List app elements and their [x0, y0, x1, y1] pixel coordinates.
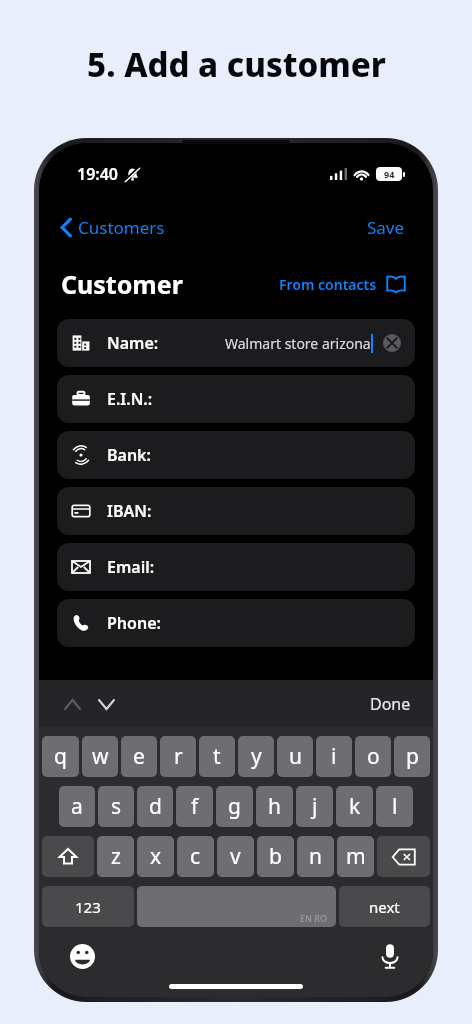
- button[interactable]: s: [98, 786, 134, 827]
- staticText: i: [331, 742, 337, 771]
- staticText: Phone:: [107, 612, 161, 634]
- staticText: IBAN:: [107, 500, 152, 522]
- staticText: g: [228, 792, 241, 821]
- button[interactable]: Backspace: [377, 836, 430, 877]
- staticText: q: [54, 742, 67, 771]
- staticText: f: [191, 792, 199, 821]
- staticText: s: [111, 792, 122, 821]
- staticText: b: [269, 842, 282, 871]
- staticText: k: [349, 792, 361, 821]
- button[interactable]: n: [297, 836, 334, 877]
- button[interactable]: o: [355, 736, 391, 777]
- button[interactable]: h: [256, 786, 293, 827]
- button[interactable]: d: [137, 786, 173, 827]
- staticText: Customers: [78, 216, 165, 239]
- button[interactable]: Email:: [57, 543, 415, 591]
- button[interactable]: a: [59, 786, 95, 827]
- staticText: n: [309, 842, 322, 871]
- staticText: m: [346, 842, 366, 871]
- button[interactable]: Save: [361, 210, 411, 245]
- button[interactable]: x: [137, 836, 174, 877]
- button[interactable]: p: [394, 736, 430, 777]
- button[interactable]: Done: [364, 687, 417, 721]
- button[interactable]: u: [277, 736, 313, 777]
- staticText: Done: [370, 693, 411, 715]
- button[interactable]: E.I.N.:: [57, 375, 415, 423]
- staticText: y: [251, 742, 262, 771]
- staticText: l: [392, 792, 398, 821]
- staticText: 123: [75, 897, 101, 917]
- button[interactable]: next: [339, 886, 430, 927]
- staticText: a: [71, 792, 83, 821]
- button[interactable]: m: [337, 836, 374, 877]
- button[interactable]: k: [336, 786, 373, 827]
- button[interactable]: z: [97, 836, 134, 877]
- staticText: d: [149, 792, 162, 821]
- staticText: c: [190, 842, 201, 871]
- button[interactable]: Clear text: [383, 334, 401, 352]
- button[interactable]: Shift: [42, 836, 94, 877]
- staticText: 94: [384, 168, 395, 180]
- staticText: r: [174, 742, 183, 771]
- staticText: j: [312, 792, 318, 821]
- button[interactable]: b: [257, 836, 294, 877]
- button[interactable]: c: [177, 836, 214, 877]
- button[interactable]: j: [296, 786, 333, 827]
- staticText: E.I.N.:: [107, 388, 153, 410]
- staticText: x: [150, 842, 162, 871]
- button[interactable]: r: [160, 736, 196, 777]
- staticText: Bank:: [107, 444, 151, 466]
- button[interactable]: v: [217, 836, 254, 877]
- staticText: o: [367, 742, 380, 771]
- staticText: 5. Add a customer: [87, 42, 386, 87]
- staticText: h: [268, 792, 281, 821]
- button[interactable]: q: [42, 736, 79, 777]
- staticText: Customer: [61, 267, 183, 301]
- button[interactable]: f: [176, 786, 213, 827]
- button[interactable]: From contacts: [275, 269, 411, 299]
- staticText: p: [406, 742, 419, 771]
- button[interactable]: Previous field: [55, 687, 89, 721]
- button[interactable]: w: [82, 736, 118, 777]
- button[interactable]: Customers: [57, 212, 169, 243]
- button[interactable]: 123: [42, 886, 134, 927]
- button[interactable]: g: [216, 786, 253, 827]
- staticText: Name:: [107, 332, 159, 354]
- staticText: Save: [367, 216, 405, 239]
- button[interactable]: Emoji: [65, 939, 99, 973]
- staticText: EN RO: [300, 912, 328, 924]
- button[interactable]: Phone:: [57, 599, 415, 647]
- button[interactable]: l: [376, 786, 413, 827]
- staticText: u: [289, 742, 302, 771]
- staticText: Email:: [107, 556, 155, 578]
- staticText: 19:40: [77, 163, 119, 185]
- button[interactable]: Name:: [57, 319, 415, 367]
- button[interactable]: y: [238, 736, 274, 777]
- button[interactable]: Dictation: [373, 939, 407, 973]
- button[interactable]: Bank:: [57, 431, 415, 479]
- staticText: From contacts: [279, 275, 377, 294]
- button[interactable]: IBAN:: [57, 487, 415, 535]
- staticText: e: [133, 742, 145, 771]
- staticText: t: [213, 742, 221, 771]
- button[interactable]: t: [199, 736, 235, 777]
- staticText: next: [369, 897, 400, 917]
- button[interactable]: i: [316, 736, 352, 777]
- button[interactable]: Space: [137, 886, 336, 927]
- button[interactable]: e: [121, 736, 157, 777]
- button[interactable]: Next field: [89, 687, 123, 721]
- staticText: Walmart store arizona: [225, 334, 371, 353]
- staticText: w: [92, 742, 109, 771]
- staticText: v: [230, 842, 241, 871]
- staticText: z: [111, 842, 121, 871]
